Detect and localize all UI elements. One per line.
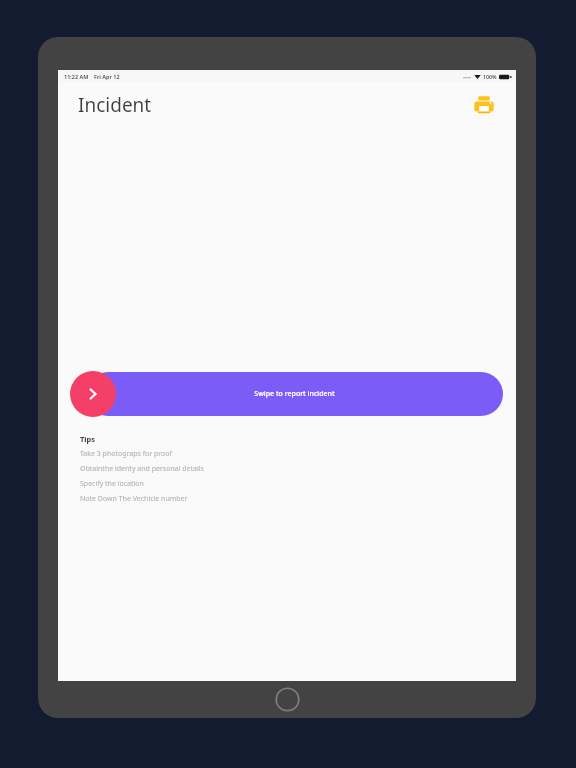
- staticText: Incident: [78, 92, 152, 118]
- staticText: 11:22 AM: [64, 73, 89, 80]
- staticText: Take 3 photograps for proof: [80, 449, 172, 459]
- staticText: Note Down The Vechicle number: [80, 494, 188, 504]
- staticText: Swipe to report incident: [254, 389, 335, 399]
- staticText: Tips: [80, 434, 96, 444]
- staticText: Obtainthe identy and personal details: [80, 464, 204, 474]
- button[interactable]: Home: [275, 687, 300, 712]
- button[interactable]: Swipe to report incident: [70, 371, 116, 417]
- staticText: Fri Apr 12: [94, 73, 120, 80]
- button[interactable]: Print: [470, 91, 498, 119]
- staticText: Specify the location: [80, 479, 144, 489]
- button[interactable]: Swipe to report incident: [86, 372, 503, 416]
- staticText: 100%: [483, 73, 497, 80]
